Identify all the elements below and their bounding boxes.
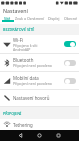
button[interactable]: Recents	[53, 130, 64, 141]
button[interactable]: Displej	[45, 15, 62, 24]
button[interactable]: Bluetooth	[0, 54, 79, 71]
staticText: PŘIPOJENÍ	[3, 111, 22, 116]
button[interactable]: Tethering	[0, 119, 79, 130]
staticText: Nastavení hovorů	[13, 95, 50, 101]
button[interactable]: Zvuk a Oznámení	[15, 15, 45, 24]
button[interactable]: Wi-Fi	[0, 35, 79, 53]
button[interactable]: Obecné	[62, 15, 79, 24]
staticText: Bluetooth	[13, 57, 34, 63]
button[interactable]: Nastavení hovorů	[0, 90, 79, 106]
staticText: Připojeno k síti AndroidAP	[13, 43, 38, 52]
staticText: Zvuk a Oznámení	[15, 16, 45, 21]
staticText: Mobilní data	[13, 75, 39, 81]
staticText: BEZDRÁTOVÉ SÍTĚ	[3, 27, 35, 32]
staticText: Displej	[48, 16, 60, 21]
staticText: Obecné	[64, 16, 78, 21]
staticText: Wi-Fi	[13, 37, 24, 43]
button[interactable]: Sítě	[0, 15, 15, 24]
staticText: Připojení není povoleno	[13, 63, 52, 68]
button[interactable]: Mobilní data	[0, 72, 79, 89]
staticText: Sítě	[4, 16, 11, 21]
button[interactable]: Back	[15, 130, 26, 141]
staticText: Připojení není povoleno	[13, 81, 52, 86]
staticText: Nastavení	[3, 7, 28, 14]
staticText: Tethering	[13, 122, 33, 128]
button[interactable]: Home	[34, 130, 45, 141]
